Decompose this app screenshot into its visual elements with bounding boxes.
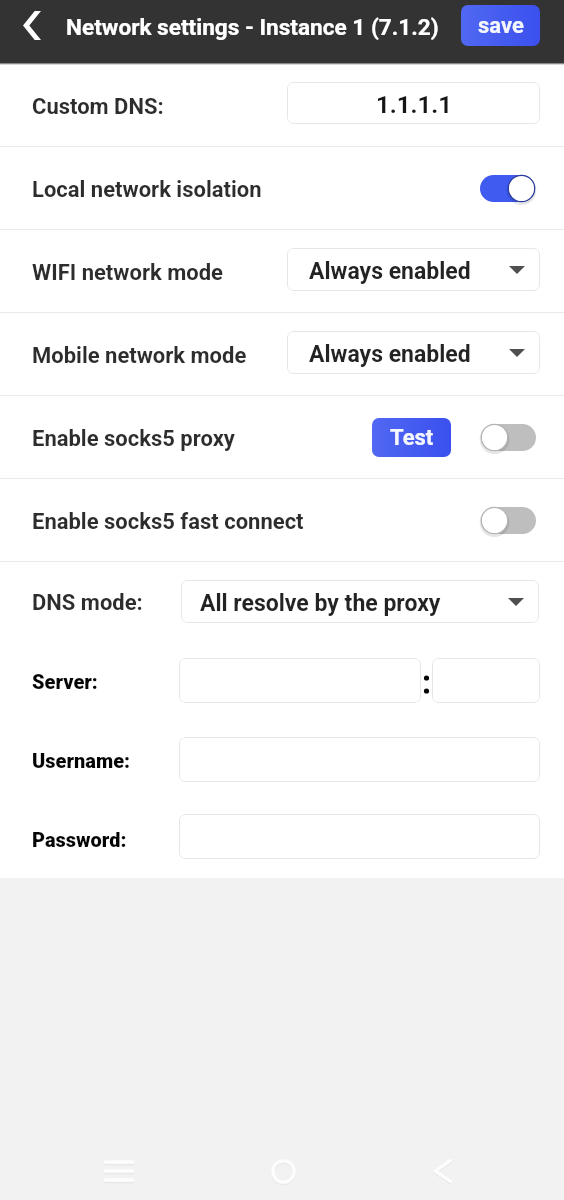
staticText: DNS mode:	[32, 590, 143, 616]
button[interactable]: All resolve by the proxy	[181, 580, 539, 623]
button[interactable]: Always enabled	[287, 248, 540, 291]
button[interactable]: Always enabled	[287, 331, 540, 374]
button[interactable]: Toggle on	[476, 170, 539, 207]
button[interactable]: save	[461, 5, 540, 46]
staticText: Enable socks5 proxy	[32, 426, 235, 452]
staticText: Custom DNS:	[32, 94, 164, 120]
button[interactable]: Toggle off	[477, 502, 540, 539]
button[interactable]: 1.1.1.1	[287, 82, 540, 124]
button[interactable]	[432, 658, 540, 703]
button[interactable]	[179, 814, 540, 859]
staticText: Test	[390, 425, 434, 451]
staticText: 1.1.1.1	[376, 91, 452, 119]
staticText: Always enabled	[309, 258, 471, 285]
button[interactable]: Toggle off	[477, 419, 540, 456]
staticText: All resolve by the proxy	[200, 590, 441, 617]
staticText: WIFI network mode	[32, 260, 223, 286]
staticText: Username:	[32, 749, 131, 772]
staticText: Server:	[32, 670, 98, 693]
staticText: Network settings - Instance 1 (7.1.2)	[66, 14, 439, 40]
button[interactable]: Back	[4, 0, 60, 51]
staticText: save	[478, 13, 524, 39]
staticText: Enable socks5 fast connect	[32, 509, 304, 535]
staticText: Mobile network mode	[32, 343, 247, 369]
button[interactable]	[179, 737, 540, 782]
staticText: Always enabled	[309, 341, 471, 368]
staticText: Local network isolation	[32, 177, 262, 203]
button[interactable]: Test	[372, 418, 451, 457]
staticText: Password:	[32, 828, 127, 851]
button[interactable]	[179, 658, 421, 703]
